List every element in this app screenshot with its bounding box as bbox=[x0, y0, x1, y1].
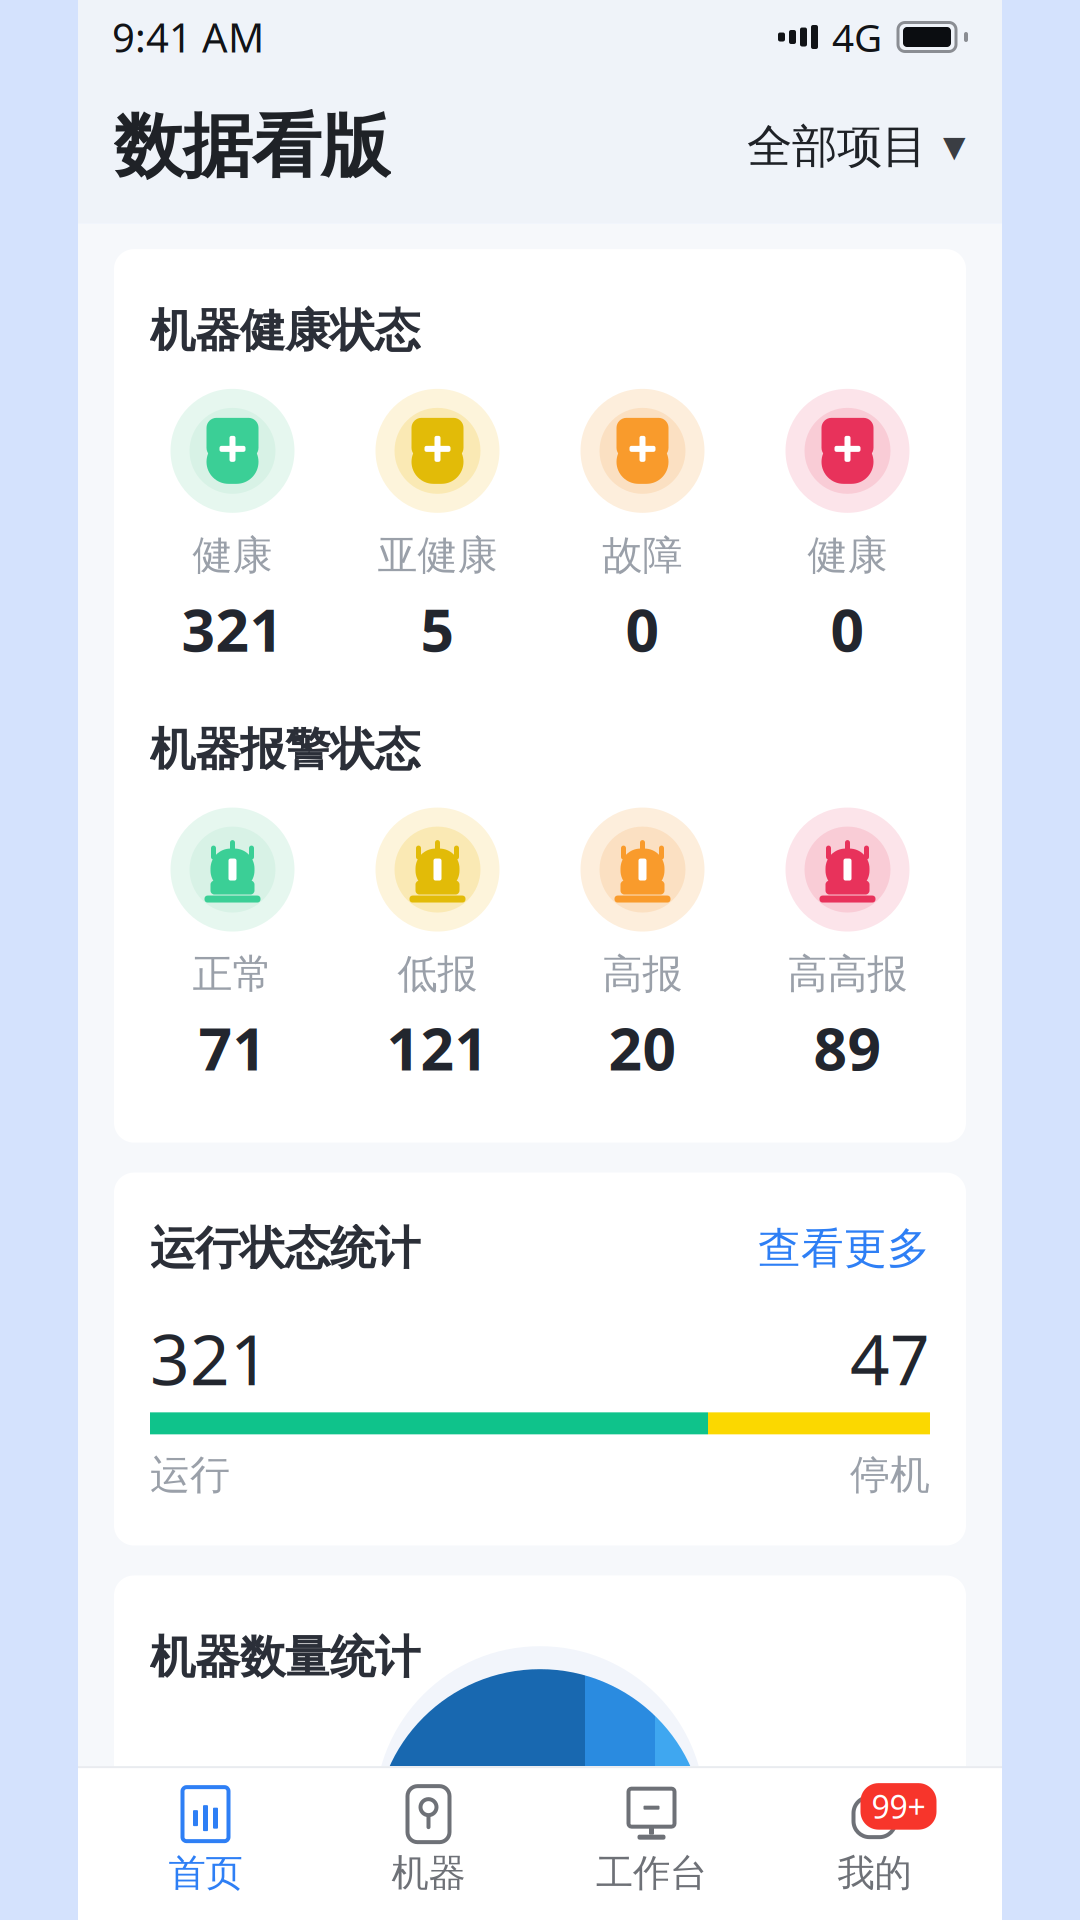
staticText: 首页 bbox=[168, 1850, 242, 1896]
staticText: 全部项目 bbox=[747, 119, 927, 174]
staticText: 机器报警状态 bbox=[150, 722, 420, 778]
button[interactable]: 健康 bbox=[745, 389, 950, 668]
staticText: 正常 bbox=[192, 950, 272, 999]
button[interactable]: 亚健康 bbox=[335, 389, 540, 668]
staticText: 查看更多 bbox=[758, 1222, 930, 1275]
staticText: 47 bbox=[850, 1312, 930, 1404]
staticText: 4G bbox=[832, 11, 882, 63]
button[interactable]: 工作台 bbox=[540, 1786, 763, 1896]
staticText: ▼ bbox=[943, 130, 966, 163]
staticText: 0 bbox=[830, 590, 864, 668]
button[interactable]: 机器 bbox=[317, 1786, 540, 1896]
staticText: 亚健康 bbox=[377, 531, 497, 580]
button[interactable]: 查看更多 bbox=[758, 1222, 930, 1275]
staticText: 99+ bbox=[871, 1785, 925, 1828]
staticText: 20 bbox=[608, 1009, 676, 1087]
staticText: 321 bbox=[181, 590, 283, 668]
staticText: 高高报 bbox=[787, 950, 907, 999]
button[interactable]: 99+ bbox=[763, 1786, 986, 1896]
staticText: 121 bbox=[386, 1009, 488, 1087]
staticText: 高报 bbox=[602, 950, 682, 999]
button[interactable]: 全部项目 bbox=[747, 119, 966, 174]
staticText: 健康 bbox=[192, 531, 272, 580]
staticText: 89 bbox=[813, 1009, 881, 1087]
button[interactable]: 高高报 bbox=[745, 808, 950, 1087]
button[interactable]: 正常 bbox=[130, 808, 335, 1087]
staticText: 数据看版 bbox=[114, 104, 390, 189]
staticText: 0 bbox=[625, 590, 659, 668]
button[interactable]: 高报 bbox=[540, 808, 745, 1087]
staticText: 机器数量统计 bbox=[150, 1629, 420, 1685]
staticText: 工作台 bbox=[596, 1850, 707, 1896]
button[interactable]: 低报 bbox=[335, 808, 540, 1087]
staticText: 9:41 AM bbox=[112, 10, 264, 63]
staticText: 机器 bbox=[391, 1850, 465, 1896]
staticText: 运行状态统计 bbox=[150, 1221, 420, 1276]
staticText: 5 bbox=[420, 590, 454, 668]
button[interactable]: 故障 bbox=[540, 389, 745, 668]
button[interactable]: 健康 bbox=[130, 389, 335, 668]
staticText: 停机 bbox=[850, 1450, 930, 1499]
staticText: 低报 bbox=[397, 950, 477, 999]
staticText: 71 bbox=[198, 1009, 266, 1087]
staticText: 运行 bbox=[150, 1450, 230, 1499]
staticText: 机器健康状态 bbox=[150, 303, 420, 359]
button[interactable]: 首页 bbox=[94, 1786, 317, 1896]
staticText: 故障 bbox=[602, 531, 682, 580]
staticText: 321 bbox=[150, 1312, 270, 1404]
staticText: 健康 bbox=[807, 531, 887, 580]
staticText: 我的 bbox=[837, 1850, 911, 1896]
